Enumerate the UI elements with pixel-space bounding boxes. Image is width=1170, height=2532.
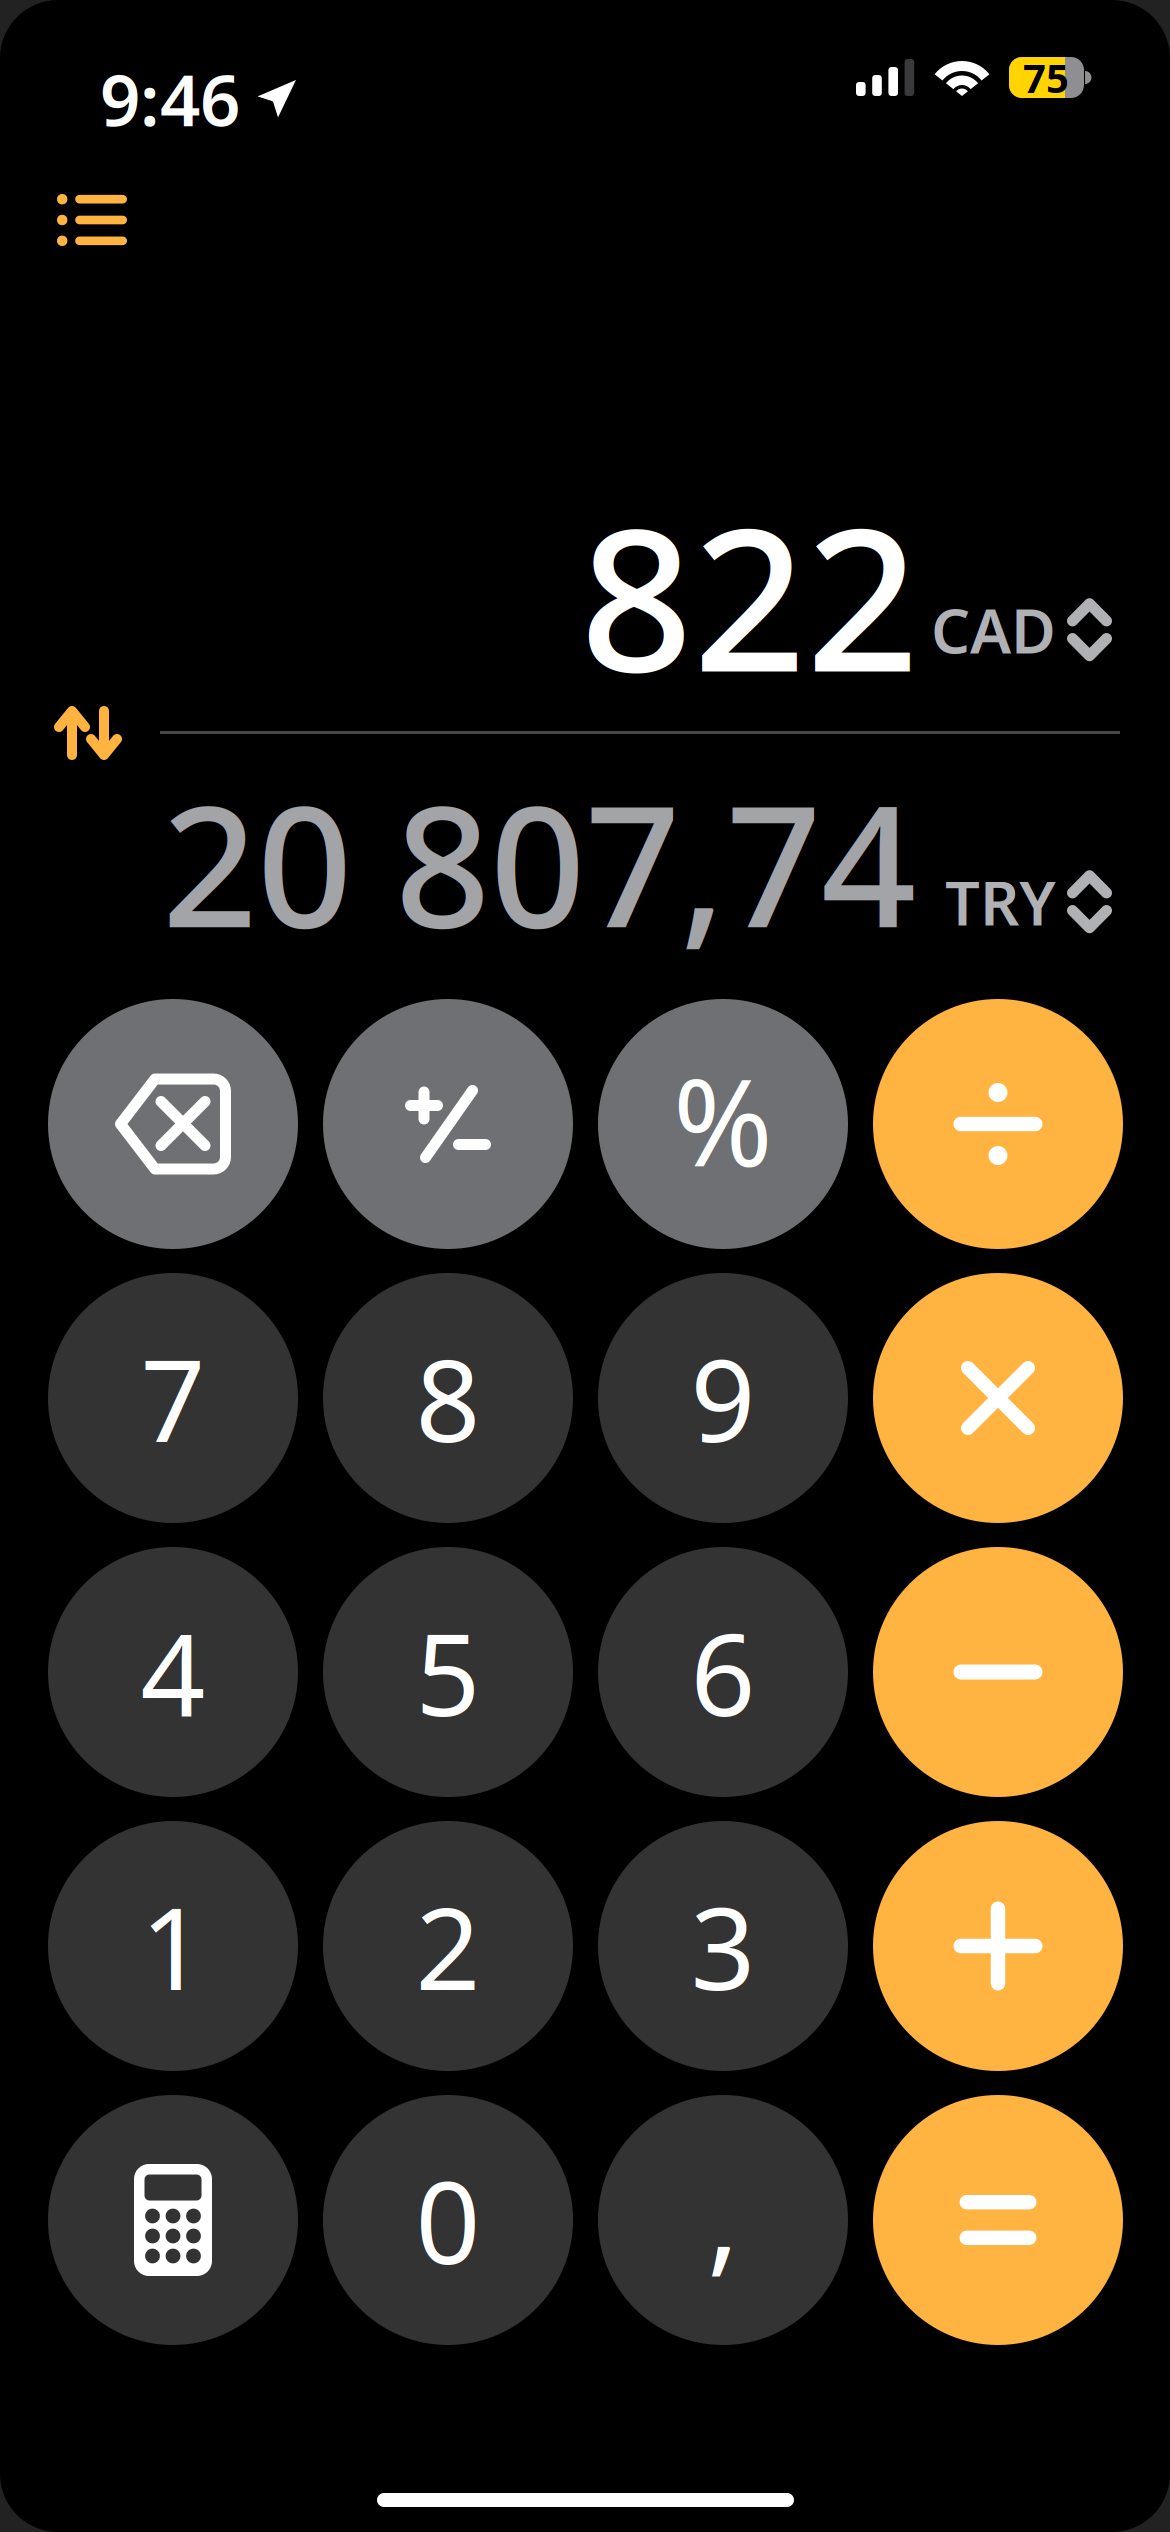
button[interactable]: 0 <box>323 2095 573 2345</box>
button[interactable]: Add <box>873 1821 1123 2071</box>
button[interactable]: TRY currency <box>945 861 1112 942</box>
staticText: 8 <box>415 1323 480 1473</box>
button[interactable]: Swap currencies <box>0 680 160 786</box>
staticText: 9:46 <box>100 52 240 146</box>
staticText: 3 <box>690 1871 755 2021</box>
button[interactable]: Toggle sign <box>323 999 573 1249</box>
button[interactable]: 6 <box>598 1547 848 1797</box>
button[interactable]: Multiply <box>873 1273 1123 1523</box>
button[interactable]: 8 <box>323 1273 573 1523</box>
staticText: 2 <box>415 1871 480 2021</box>
button[interactable]: 2 <box>323 1821 573 2071</box>
staticText: 75 <box>1023 51 1069 104</box>
button[interactable]: Subtract <box>873 1547 1123 1797</box>
staticText: 6 <box>690 1597 755 1747</box>
button[interactable]: , <box>598 2095 848 2345</box>
button[interactable]: Delete <box>48 999 298 1249</box>
staticText: TRY <box>945 861 1056 942</box>
staticText: 822 <box>580 464 919 726</box>
button[interactable]: 7 <box>48 1273 298 1523</box>
button[interactable]: % <box>598 999 848 1249</box>
button[interactable]: Currency list <box>0 166 171 278</box>
button[interactable]: 3 <box>598 1821 848 2071</box>
staticText: , <box>707 2134 739 2294</box>
button[interactable]: CAD currency <box>931 589 1112 670</box>
staticText: 1 <box>140 1871 205 2021</box>
button[interactable]: 9 <box>598 1273 848 1523</box>
button[interactable]: Equals <box>873 2095 1123 2345</box>
button[interactable]: Divide <box>873 999 1123 1249</box>
button[interactable]: Calculator <box>48 2095 298 2345</box>
staticText: CAD <box>931 589 1056 670</box>
button[interactable]: 4 <box>48 1547 298 1797</box>
staticText: 9 <box>690 1323 755 1473</box>
staticText: 7 <box>140 1323 205 1473</box>
staticText: 20 807,74 <box>162 752 916 973</box>
staticText: 5 <box>415 1597 480 1747</box>
button[interactable]: 5 <box>323 1547 573 1797</box>
staticText: 0 <box>415 2145 480 2295</box>
button[interactable]: 1 <box>48 1821 298 2071</box>
staticText: 4 <box>140 1597 205 1747</box>
staticText: % <box>673 1040 773 1200</box>
